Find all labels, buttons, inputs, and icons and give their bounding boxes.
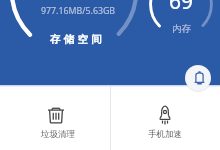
staticText: 手机加速 [148, 129, 182, 140]
staticText: 977.16MB/5.63GB [41, 5, 116, 17]
staticText: 内存 [172, 23, 191, 35]
staticText: 69 [169, 0, 194, 16]
button[interactable]: 垃圾清理 [23, 90, 93, 150]
button[interactable]: 手机加速 [130, 90, 200, 150]
staticText: 存储空间 [50, 33, 105, 46]
button[interactable]: Notifications [185, 65, 211, 91]
staticText: 垃圾清理 [41, 129, 75, 140]
